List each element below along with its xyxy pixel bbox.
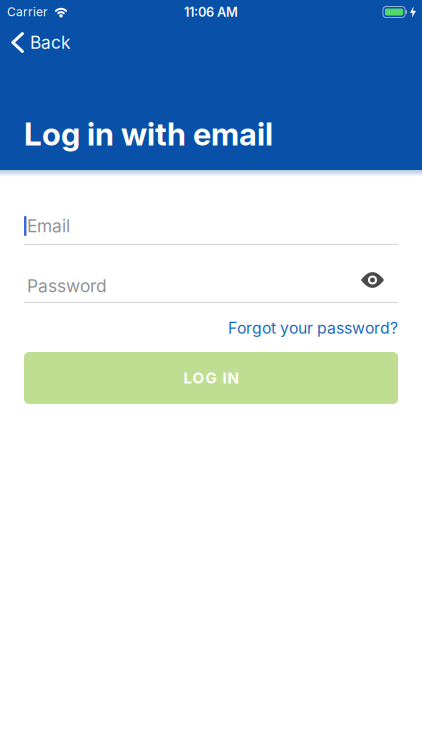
- staticText: Back: [30, 32, 71, 53]
- staticText: Forgot your password?: [228, 318, 398, 337]
- staticText: LOG IN: [183, 369, 238, 387]
- button[interactable]: Back: [0, 24, 71, 61]
- staticText: 11:06 AM: [184, 4, 238, 20]
- staticText: Email: [27, 215, 70, 236]
- button[interactable]: Forgot your password?: [228, 318, 398, 337]
- staticText: Log in with email: [24, 115, 273, 153]
- staticText: Carrier: [7, 5, 48, 19]
- button[interactable]: LOG IN: [24, 352, 398, 404]
- staticText: Password: [27, 275, 107, 296]
- button[interactable]: Email: [24, 214, 398, 245]
- button[interactable]: Show password: [361, 278, 398, 293]
- button[interactable]: Password: [24, 245, 398, 303]
